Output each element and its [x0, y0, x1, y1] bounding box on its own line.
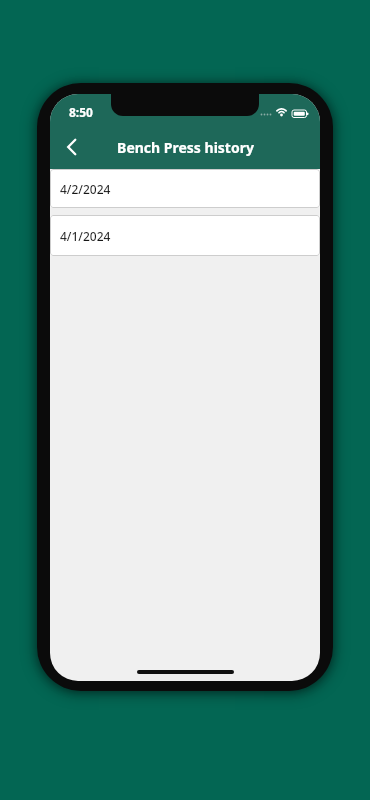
staticText: 4/1/2024: [60, 228, 111, 244]
staticText: 4/2/2024: [60, 181, 111, 197]
button[interactable]: 4/1/2024: [50, 215, 320, 256]
staticText: 8:50: [69, 104, 93, 120]
button[interactable]: [56, 131, 88, 163]
staticText: Bench Press history: [117, 138, 254, 157]
button[interactable]: 4/2/2024: [50, 169, 320, 208]
